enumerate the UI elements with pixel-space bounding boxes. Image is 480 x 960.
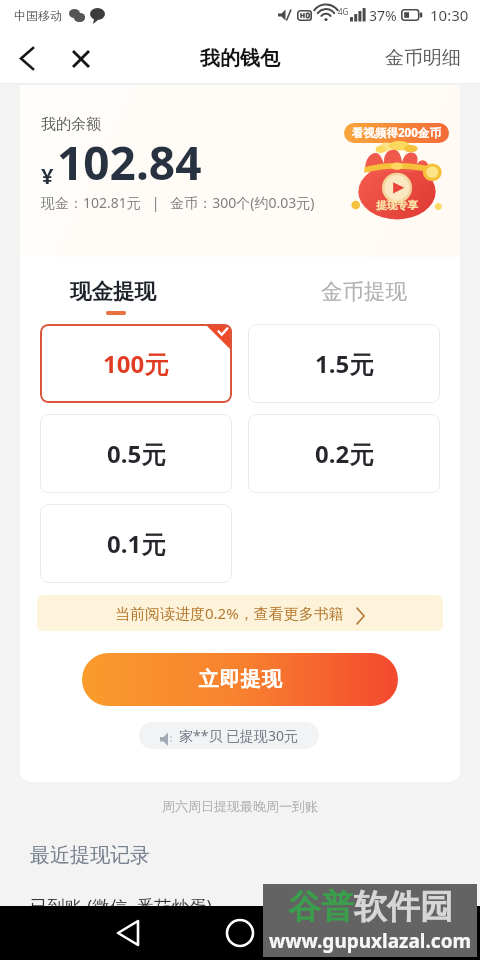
- staticText: 软件园: [354, 886, 453, 928]
- staticText: 周六周日提现最晚周一到账: [0, 798, 480, 814]
- staticText: 0.1元: [107, 527, 166, 560]
- staticText: ¥: [41, 160, 54, 190]
- button[interactable]: 0.5元: [40, 414, 232, 493]
- button[interactable]: 当前阅读进度0.2%，查看更多书籍: [37, 595, 443, 631]
- button[interactable]: Back: [9, 39, 45, 75]
- staticText: 最近提现记录: [30, 843, 150, 868]
- staticText: 立即提现: [198, 667, 282, 692]
- button[interactable]: 0.1元: [40, 504, 232, 583]
- staticText: 我的余额: [41, 115, 101, 134]
- staticText: www.gupuxlazal.com: [269, 928, 472, 954]
- staticText: 金币明细: [385, 46, 461, 70]
- button[interactable]: 0.2元: [248, 414, 440, 493]
- button[interactable]: 家**贝 已提现30元: [139, 722, 319, 749]
- staticText: 37%: [369, 6, 397, 25]
- button[interactable]: 看视频得200金币: [344, 123, 449, 148]
- staticText: 0.5元: [107, 437, 166, 470]
- staticText: 现金：102.81元 | 金币：300个(约0.03元): [41, 193, 315, 212]
- staticText: 已到账 (微信, 番茄炒蛋): [30, 894, 212, 918]
- staticText: 100元: [103, 347, 169, 380]
- staticText: 中国移动: [14, 8, 62, 23]
- button[interactable]: Home: [220, 913, 260, 953]
- staticText: 4G: [338, 6, 349, 17]
- staticText: 102.84: [57, 131, 202, 194]
- staticText: 金币提现: [321, 278, 407, 305]
- staticText: 0.2元: [315, 437, 374, 470]
- button[interactable]: Close: [63, 39, 99, 75]
- button[interactable]: Back: [110, 913, 150, 953]
- button[interactable]: 1.5元: [248, 324, 440, 403]
- staticText: 10:30: [430, 5, 469, 25]
- button[interactable]: 100元: [40, 324, 232, 403]
- staticText: 看视频得200金币: [352, 125, 441, 141]
- button[interactable]: 金币明细: [370, 35, 480, 79]
- staticText: 当前阅读进度0.2%，查看更多书籍: [115, 603, 344, 623]
- staticText: 现金提现: [70, 278, 156, 305]
- staticText: 提现专享: [376, 199, 418, 212]
- staticText: 家**贝 已提现30元: [179, 726, 299, 745]
- staticText: 1.5元: [315, 347, 374, 380]
- button[interactable]: 金币提现: [321, 278, 407, 314]
- button[interactable]: 现金提现: [70, 278, 156, 314]
- staticText: 谷普: [288, 886, 354, 928]
- button[interactable]: 立即提现: [82, 653, 398, 706]
- staticText: 我的钱包: [200, 46, 280, 71]
